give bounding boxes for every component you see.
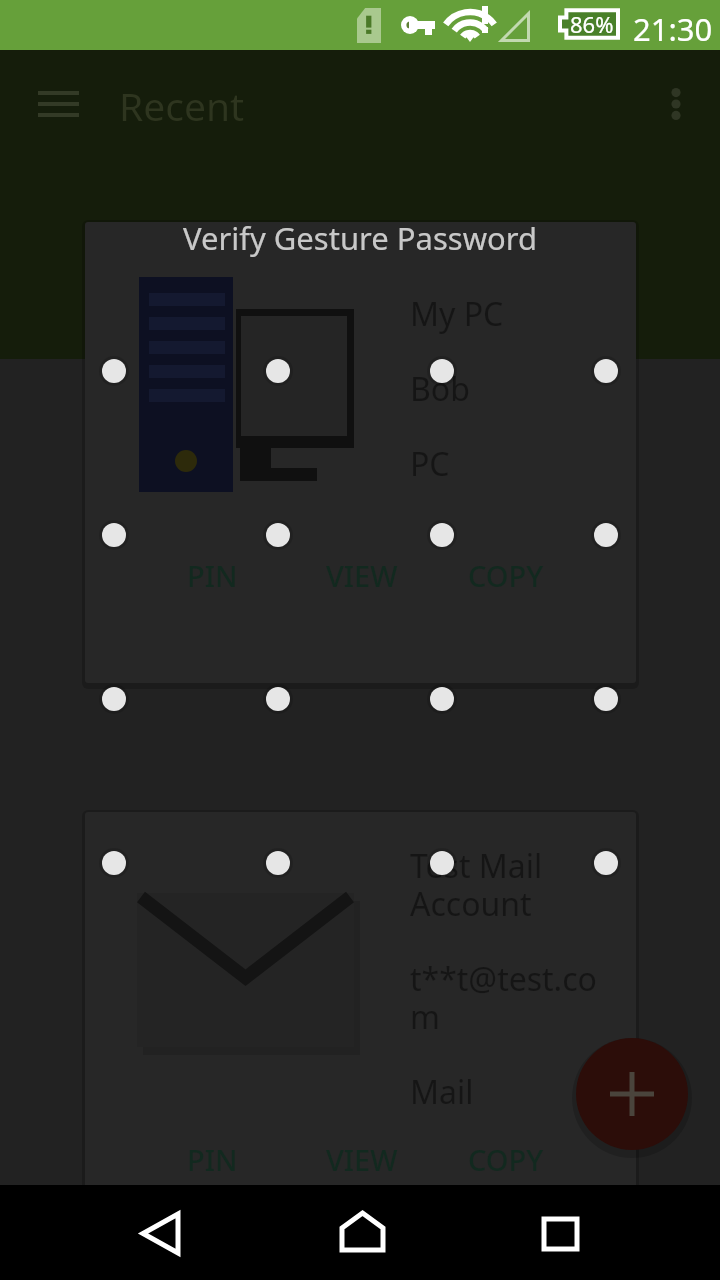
- button[interactable]: COPY: [454, 1130, 558, 1189]
- staticText: PIN: [187, 1140, 238, 1179]
- button[interactable]: Open navigation drawer: [20, 72, 96, 136]
- staticText: Mail: [410, 1070, 474, 1114]
- staticText: Bob: [410, 367, 470, 411]
- staticText: 86%: [570, 9, 614, 39]
- staticText: My PC: [410, 292, 504, 336]
- button[interactable]: Recent apps: [516, 1196, 604, 1272]
- button[interactable]: More options: [645, 72, 707, 136]
- button[interactable]: Back: [116, 1195, 204, 1271]
- button[interactable]: Test Mail: [85, 812, 636, 1273]
- staticText: Account: [410, 882, 532, 926]
- staticText: Verify Gesture Password: [183, 217, 537, 259]
- button[interactable]: My PC: [85, 222, 636, 683]
- button[interactable]: Add entry: [576, 1038, 688, 1150]
- staticText: VIEW: [326, 1140, 398, 1179]
- button[interactable]: Home: [318, 1193, 406, 1269]
- button[interactable]: PIN: [173, 1130, 252, 1189]
- staticText: 21:30: [633, 8, 713, 50]
- button[interactable]: VIEW: [312, 1130, 412, 1189]
- staticText: PIN: [187, 556, 238, 595]
- staticText: PC: [410, 442, 450, 486]
- staticText: t**t@test.co: [410, 957, 597, 1001]
- staticText: VIEW: [326, 556, 398, 595]
- button[interactable]: VIEW: [312, 546, 412, 605]
- staticText: Recent: [119, 79, 245, 132]
- staticText: COPY: [468, 1140, 544, 1179]
- button[interactable]: PIN: [173, 546, 252, 605]
- staticText: COPY: [468, 556, 544, 595]
- staticText: m: [410, 995, 440, 1039]
- button[interactable]: COPY: [454, 546, 558, 605]
- staticText: Test Mail: [410, 844, 543, 888]
